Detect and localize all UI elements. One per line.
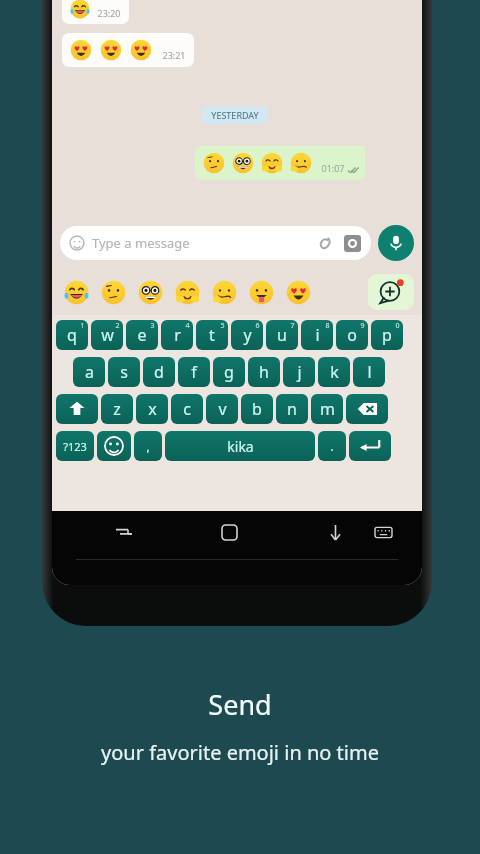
staticText: q <box>67 324 77 346</box>
staticText: m <box>320 398 335 420</box>
staticText: g <box>224 361 234 383</box>
button[interactable]: v <box>206 394 238 424</box>
staticText: x <box>148 398 157 420</box>
staticText: 4 <box>185 321 190 331</box>
staticText: z <box>113 398 121 420</box>
staticText: c <box>183 398 191 420</box>
button[interactable]: t <box>196 320 228 350</box>
staticText: 7 <box>290 321 295 331</box>
button[interactable]: Add sticker <box>368 274 414 310</box>
button[interactable]: m <box>311 394 343 424</box>
button[interactable]: c <box>171 394 203 424</box>
staticText: Type a message <box>92 234 314 252</box>
staticText: u <box>277 324 287 346</box>
button[interactable]: l <box>353 357 385 387</box>
button[interactable]: 23:21 <box>62 33 194 67</box>
staticText: i <box>315 324 320 346</box>
button[interactable]: x <box>136 394 168 424</box>
button[interactable]: a <box>73 357 105 387</box>
staticText: r <box>174 324 181 346</box>
button[interactable]: k <box>318 357 350 387</box>
button[interactable]: Enter <box>349 431 391 461</box>
staticText: 5 <box>220 321 225 331</box>
button[interactable]: Hide keyboard <box>318 515 352 549</box>
button[interactable]: e <box>126 320 158 350</box>
staticText: 01:07 <box>321 162 345 174</box>
button[interactable]: Voice message <box>378 225 414 261</box>
button[interactable]: r <box>161 320 193 350</box>
staticText: 1 <box>80 321 85 331</box>
button[interactable]: Keyboard switch <box>366 515 400 549</box>
button[interactable]: q <box>56 320 88 350</box>
staticText: b <box>252 398 262 420</box>
button[interactable]: , <box>134 431 162 461</box>
button[interactable]: b <box>241 394 273 424</box>
staticText: h <box>259 361 269 383</box>
staticText: ?123 <box>63 439 87 454</box>
staticText: s <box>120 361 128 383</box>
staticText: 0 <box>395 321 400 331</box>
button[interactable]: 23:20 <box>62 0 129 24</box>
staticText: YESTERDAY <box>211 109 259 121</box>
button[interactable]: . <box>318 431 346 461</box>
staticText: your favorite emoji in no time <box>101 739 379 766</box>
button[interactable]: s <box>108 357 140 387</box>
button[interactable]: Emoji 2 <box>98 277 128 307</box>
button[interactable]: Home <box>212 515 246 549</box>
button[interactable]: Attach <box>314 233 334 253</box>
button[interactable]: kika <box>165 431 315 461</box>
button[interactable]: Shift <box>56 394 98 424</box>
button[interactable]: h <box>248 357 280 387</box>
button[interactable]: j <box>283 357 315 387</box>
staticText: f <box>191 361 197 383</box>
staticText: Send <box>208 686 272 723</box>
button[interactable]: Emoji keyboard <box>97 431 131 461</box>
button[interactable]: g <box>213 357 245 387</box>
staticText: w <box>101 324 114 346</box>
staticText: kika <box>227 437 254 456</box>
button[interactable]: 01:07 <box>195 146 365 180</box>
button[interactable]: ?123 <box>56 431 94 461</box>
staticText: k <box>330 361 339 383</box>
staticText: p <box>382 324 392 346</box>
button[interactable]: o <box>336 320 368 350</box>
button[interactable]: f <box>178 357 210 387</box>
staticText: 23:21 <box>162 49 186 61</box>
button[interactable]: z <box>101 394 133 424</box>
button[interactable]: Recents <box>107 515 141 549</box>
button[interactable]: Emoji 1 <box>61 277 91 307</box>
button[interactable]: Camera <box>342 233 362 253</box>
staticText: 8 <box>325 321 330 331</box>
staticText: a <box>85 361 94 383</box>
button[interactable]: y <box>231 320 263 350</box>
button[interactable]: d <box>143 357 175 387</box>
button[interactable]: Backspace <box>346 394 388 424</box>
button[interactable]: Emoji 6 <box>246 277 276 307</box>
staticText: v <box>218 398 227 420</box>
button[interactable]: w <box>91 320 123 350</box>
button[interactable]: Emoji 7 <box>283 277 313 307</box>
staticText: d <box>154 361 164 383</box>
staticText: 23:20 <box>97 7 121 19</box>
button[interactable]: u <box>266 320 298 350</box>
staticText: j <box>297 361 302 383</box>
button[interactable]: Emoji 3 <box>135 277 165 307</box>
staticText: . <box>330 438 334 454</box>
staticText: y <box>243 324 252 346</box>
button[interactable]: p <box>371 320 403 350</box>
staticText: l <box>367 361 372 383</box>
button[interactable]: n <box>276 394 308 424</box>
button[interactable]: Emoji 4 <box>172 277 202 307</box>
staticText: , <box>146 438 150 454</box>
staticText: t <box>209 324 215 346</box>
staticText: e <box>137 324 147 346</box>
staticText: 2 <box>115 321 120 331</box>
staticText: 3 <box>150 321 155 331</box>
staticText: n <box>287 398 297 420</box>
staticText: 9 <box>360 321 365 331</box>
button[interactable]: Emoji 5 <box>209 277 239 307</box>
button[interactable]: Type a message <box>60 226 371 260</box>
staticText: o <box>347 324 357 346</box>
button[interactable]: i <box>301 320 333 350</box>
staticText: 6 <box>255 321 260 331</box>
